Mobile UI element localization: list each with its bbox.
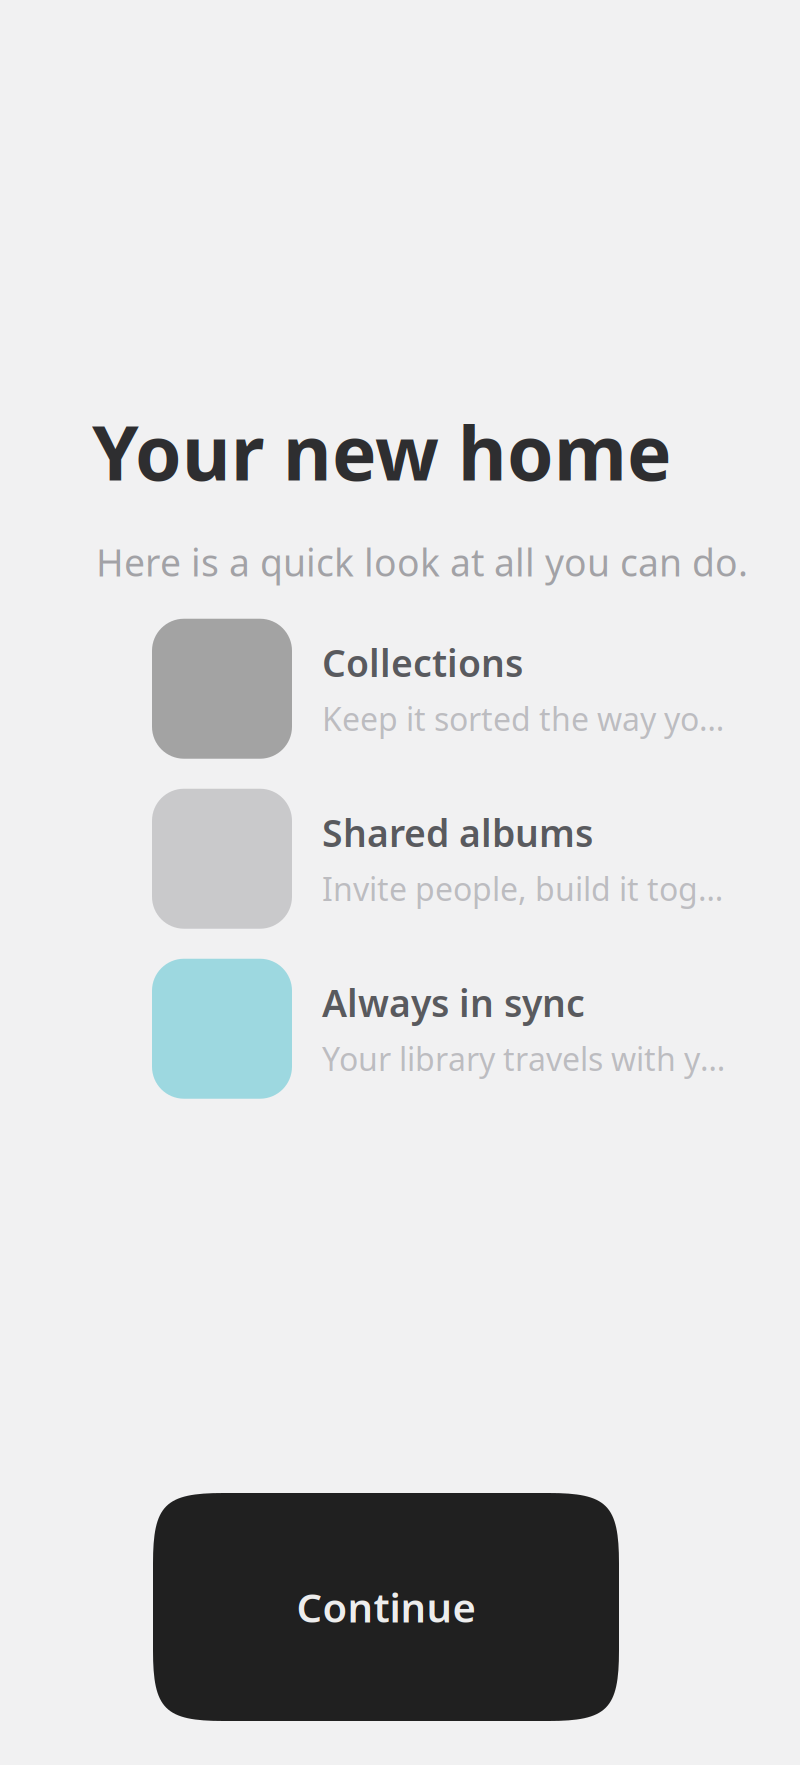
staticText: Keep it sorted the way you like. bbox=[322, 697, 730, 740]
staticText: Your library travels with you. bbox=[322, 1037, 730, 1080]
button[interactable]: Continue bbox=[153, 1493, 619, 1721]
staticText: Here is a quick look at all you can do. bbox=[96, 537, 748, 587]
staticText: Collections bbox=[322, 638, 523, 687]
staticText: Your new home bbox=[92, 402, 672, 501]
staticText: Invite people, build it together. bbox=[322, 867, 730, 910]
staticText: Always in sync bbox=[322, 978, 585, 1027]
staticText: Shared albums bbox=[322, 808, 593, 857]
staticText: Continue bbox=[296, 1580, 475, 1633]
